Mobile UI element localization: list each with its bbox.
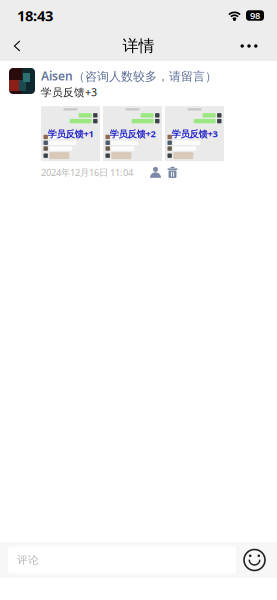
staticText: 评论 [17, 553, 39, 566]
button[interactable]: Photo 3 [165, 106, 224, 161]
button[interactable]: Back [6, 31, 28, 61]
staticText: 学员反馈+3 [171, 127, 217, 140]
button[interactable]: 评论 [8, 546, 236, 573]
staticText: 2024年12月16日 11:04 [41, 166, 133, 179]
button[interactable]: Emoji [243, 548, 266, 571]
button[interactable]: Aisen（咨询人数较多，请留言） [41, 68, 217, 84]
staticText: 学员反馈+1 [47, 127, 93, 140]
staticText: 学员反馈+3 [41, 85, 97, 99]
staticText: 98 [250, 9, 260, 22]
button[interactable]: Delete [167, 167, 178, 178]
button[interactable]: Photo 2 [103, 106, 162, 161]
staticText: Aisen（咨询人数较多，请留言） [41, 68, 217, 84]
button[interactable]: Mentions [150, 167, 161, 178]
staticText: 学员反馈+2 [109, 127, 155, 140]
staticText: 详情 [122, 36, 154, 56]
button[interactable]: Photo 1 [41, 106, 100, 161]
button[interactable]: Avatar [9, 68, 35, 94]
button[interactable]: More [233, 31, 265, 61]
staticText: 18:43 [17, 6, 53, 25]
